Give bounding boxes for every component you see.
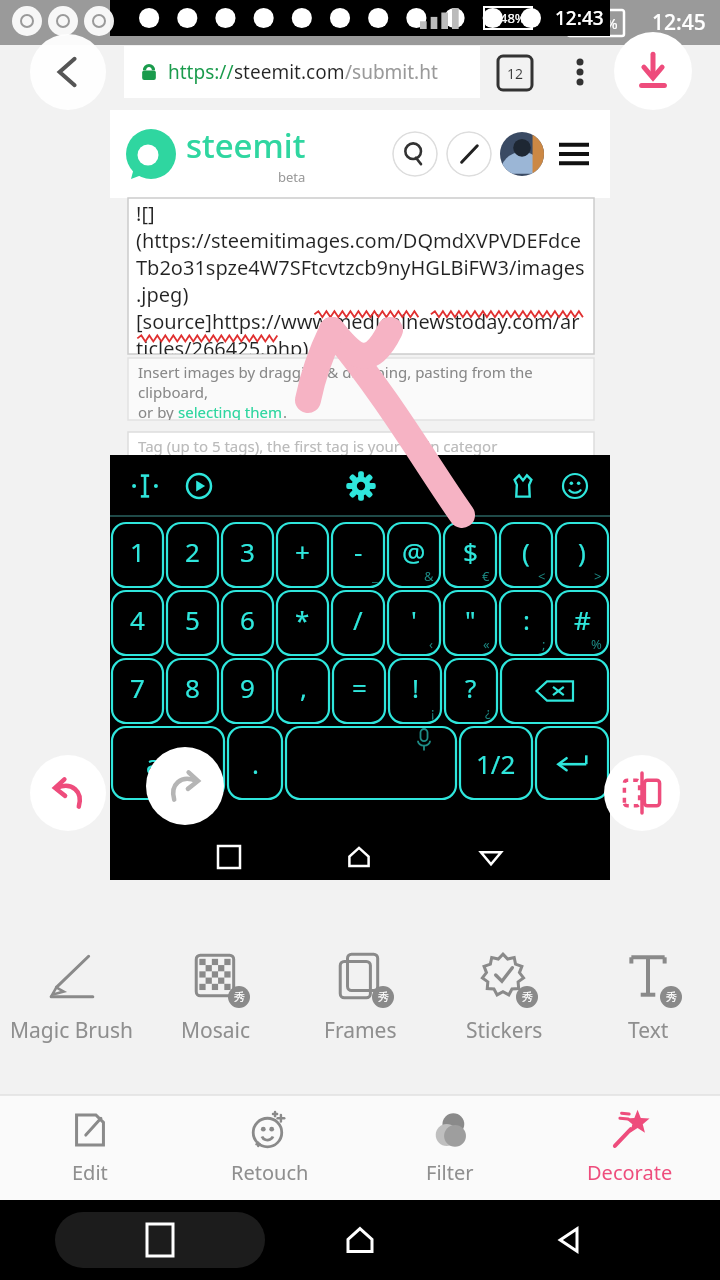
staticText: ; xyxy=(542,635,546,653)
button[interactable]: More options xyxy=(560,52,600,92)
staticText: 秀 xyxy=(666,990,677,1004)
button[interactable]: 1 xyxy=(112,523,163,587)
button[interactable]: Menu xyxy=(554,134,594,174)
staticText: ¿ xyxy=(485,703,491,721)
button[interactable]: $ xyxy=(444,523,496,587)
staticText: .jpeg) xyxy=(136,281,189,308)
button[interactable]: Back xyxy=(540,1210,600,1270)
button[interactable]: . xyxy=(228,727,282,799)
button[interactable]: 7 xyxy=(112,659,163,723)
button[interactable]: 1/2 xyxy=(460,727,532,799)
button[interactable]: 秀 xyxy=(576,925,720,1065)
staticText: /submit.ht xyxy=(345,59,438,85)
staticText: , xyxy=(300,670,307,705)
staticText: Filter xyxy=(426,1159,474,1186)
staticText: Edit xyxy=(72,1159,108,1186)
button[interactable]: ? xyxy=(445,659,497,723)
button[interactable]: Retouch xyxy=(180,1095,360,1200)
button[interactable]: https:// xyxy=(124,46,480,98)
staticText: : xyxy=(523,602,530,637)
staticText: selecting them xyxy=(178,402,283,420)
button[interactable]: / xyxy=(332,591,384,655)
staticText: 秀 xyxy=(234,990,245,1004)
button[interactable]: , xyxy=(277,659,329,723)
staticText: % xyxy=(591,635,602,653)
button[interactable]: Magic Brush xyxy=(0,925,144,1065)
staticText: 秀 xyxy=(378,990,389,1004)
staticText: 1 xyxy=(130,534,145,569)
button[interactable]: : xyxy=(500,591,552,655)
button[interactable]: Filter xyxy=(360,1095,540,1200)
staticText: " xyxy=(465,602,476,637)
staticText: ) xyxy=(578,534,586,569)
button[interactable]: Delete xyxy=(501,659,608,723)
button[interactable]: ![] xyxy=(128,198,594,354)
button[interactable]: Home xyxy=(330,1210,390,1270)
button[interactable]: + xyxy=(277,523,328,587)
button[interactable]: ( xyxy=(500,523,552,587)
staticText: Text xyxy=(628,1016,669,1045)
staticText: ticles/266425.php) xyxy=(136,335,309,354)
staticText: https://www.medicalnewstoday.com/ar xyxy=(212,308,580,335)
button[interactable]: Recents xyxy=(55,1212,265,1268)
staticText: « xyxy=(483,635,490,653)
button[interactable]: 3 xyxy=(222,523,273,587)
button[interactable]: 秀 xyxy=(144,925,288,1065)
button[interactable]: Tabs xyxy=(498,56,532,90)
button[interactable]: Themes xyxy=(506,469,540,503)
staticText: 6 xyxy=(240,602,255,637)
button[interactable]: = xyxy=(333,659,385,723)
button[interactable]: Back xyxy=(30,34,106,110)
staticText: ![] xyxy=(136,200,155,227)
button[interactable]: Redo xyxy=(146,747,224,825)
button[interactable]: Write post xyxy=(446,131,492,177)
button[interactable]: Enter xyxy=(536,727,608,799)
button[interactable]: 6 xyxy=(222,591,273,655)
staticText: steemit xyxy=(186,123,306,168)
staticText: _ xyxy=(372,567,378,585)
staticText: 1/2 xyxy=(476,746,516,781)
button[interactable]: Edit xyxy=(0,1095,180,1200)
button[interactable]: 8 xyxy=(167,659,218,723)
button[interactable]: Decorate xyxy=(540,1095,720,1200)
button[interactable]: Emoji xyxy=(558,469,592,503)
button[interactable]: Search xyxy=(392,131,438,177)
staticText: Frames xyxy=(324,1016,397,1045)
button[interactable]: 秀 xyxy=(288,925,432,1065)
button[interactable]: @ xyxy=(388,523,440,587)
button[interactable]: 5 xyxy=(167,591,218,655)
staticText: [source] xyxy=(136,308,212,335)
button[interactable]: " xyxy=(444,591,496,655)
button[interactable]: * xyxy=(277,591,328,655)
staticText: Tag (up to 5 tags), the first tag is you… xyxy=(138,436,498,456)
button[interactable]: ' xyxy=(388,591,440,655)
staticText: Stickers xyxy=(466,1016,543,1045)
button[interactable]: abc xyxy=(112,727,224,799)
button[interactable]: 秀 xyxy=(432,925,576,1065)
staticText: 7 xyxy=(130,670,145,705)
staticText: or by xyxy=(138,402,178,420)
button[interactable]: # xyxy=(556,591,608,655)
staticText: beta xyxy=(278,168,306,186)
staticText: Insert images by dragging & dropping, pa… xyxy=(138,362,594,402)
button[interactable]: GIF xyxy=(182,469,216,503)
staticText: 秀 xyxy=(522,990,533,1004)
button[interactable]: 9 xyxy=(222,659,273,723)
button[interactable]: Space xyxy=(286,727,456,799)
button[interactable]: ) xyxy=(556,523,608,587)
button[interactable]: Settings xyxy=(342,467,380,505)
staticText: > xyxy=(594,567,602,585)
button[interactable]: Mirror xyxy=(604,755,680,831)
button[interactable]: 2 xyxy=(167,523,218,587)
button[interactable]: 4 xyxy=(112,591,163,655)
staticText: / xyxy=(353,602,363,637)
button[interactable]: - xyxy=(332,523,384,587)
button[interactable]: ! xyxy=(389,659,441,723)
staticText: ‹ xyxy=(429,635,434,653)
staticText: 5 xyxy=(185,602,200,637)
button[interactable]: Profile xyxy=(500,132,544,176)
button[interactable]: Undo xyxy=(30,755,106,831)
button[interactable]: Cursor control xyxy=(128,469,162,503)
button[interactable]: Save xyxy=(614,32,692,110)
staticText: Decorate xyxy=(587,1159,673,1186)
